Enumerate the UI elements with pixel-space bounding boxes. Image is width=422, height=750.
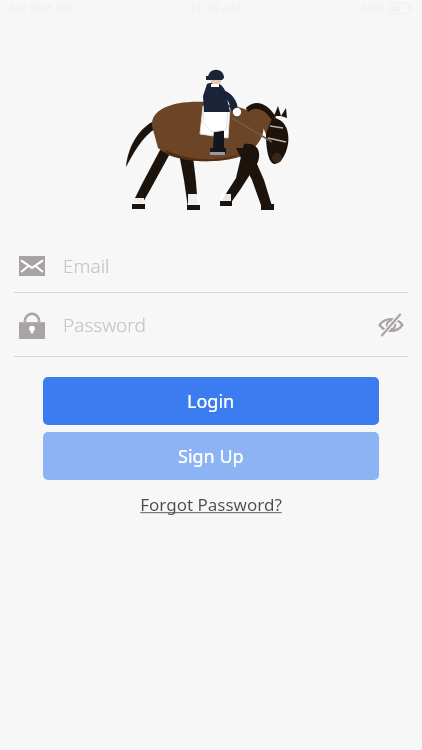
button[interactable]: Sign Up [43, 432, 379, 480]
staticText: Login [187, 389, 235, 414]
staticText: Sign Up [178, 444, 244, 469]
button[interactable]: Email [0, 240, 422, 292]
button[interactable]: Login [43, 377, 379, 425]
button[interactable]: Forgot Password? [130, 490, 292, 519]
button[interactable]: Password [0, 293, 422, 356]
button[interactable]: Show password [374, 308, 408, 342]
staticText: Email [63, 253, 110, 279]
staticText: Forgot Password? [140, 493, 282, 516]
staticText: Password [63, 312, 146, 338]
